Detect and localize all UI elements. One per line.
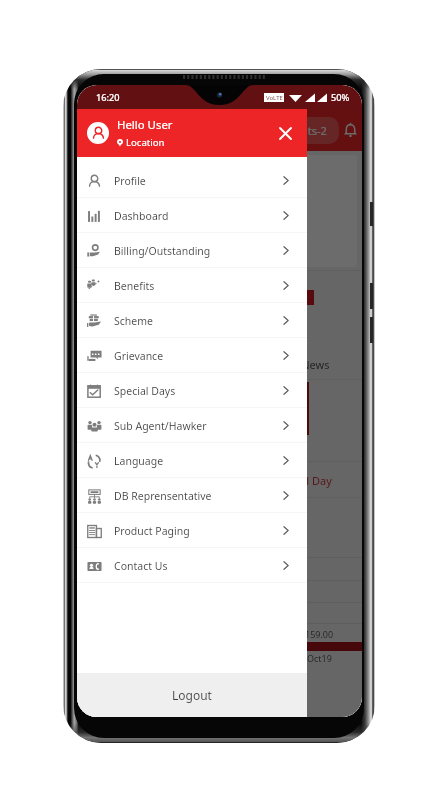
button[interactable]: Contact Us [77, 548, 307, 583]
button[interactable]: Close menu [263, 109, 307, 157]
button[interactable]: Special Days [77, 373, 307, 408]
button[interactable]: Grievance [77, 338, 307, 373]
button[interactable]: Hints-2 [277, 117, 339, 144]
staticText: Product Paging [114, 524, 190, 538]
button[interactable]: Sub Agent/Hawker [77, 408, 307, 443]
staticText: Sub Agent/Hawker [114, 419, 207, 433]
button[interactable]: Billing/Outstanding [77, 233, 307, 268]
staticText: Billing/Outstanding [114, 244, 211, 258]
button[interactable]: Benefits [77, 268, 307, 303]
staticText: VoLTE [266, 94, 283, 102]
staticText: DB Reprensentative [114, 489, 212, 503]
staticText: Hints-2 [290, 123, 327, 138]
staticText: Hello User [117, 117, 173, 133]
staticText: Language [114, 454, 164, 468]
button[interactable]: Dashboard [77, 198, 307, 233]
staticText: Scheme [114, 314, 153, 328]
staticText: Dashboard [114, 209, 169, 223]
staticText: 50% [331, 91, 350, 104]
staticText: Grievance [114, 349, 164, 363]
button[interactable]: Language [77, 443, 307, 478]
staticText: Logout [172, 687, 212, 703]
button[interactable]: Logout [77, 673, 307, 717]
staticText: Special Day [273, 473, 332, 488]
staticText: Benefits [114, 279, 155, 293]
button[interactable]: Profile [77, 163, 307, 198]
button[interactable]: Scheme [77, 303, 307, 338]
staticText: 16:20 [96, 91, 120, 104]
button[interactable]: Product Paging [77, 513, 307, 548]
staticText: Special Days [114, 384, 176, 398]
staticText: Location [126, 136, 165, 149]
staticText: Oct19 [307, 652, 332, 664]
button[interactable]: DB Reprensentative [77, 478, 307, 513]
staticText: 159.00 [305, 628, 334, 640]
staticText: Latest News [267, 357, 330, 372]
staticText: Profile [114, 174, 146, 188]
button[interactable]: Notifications [339, 119, 361, 141]
staticText: Contact Us [114, 559, 168, 573]
